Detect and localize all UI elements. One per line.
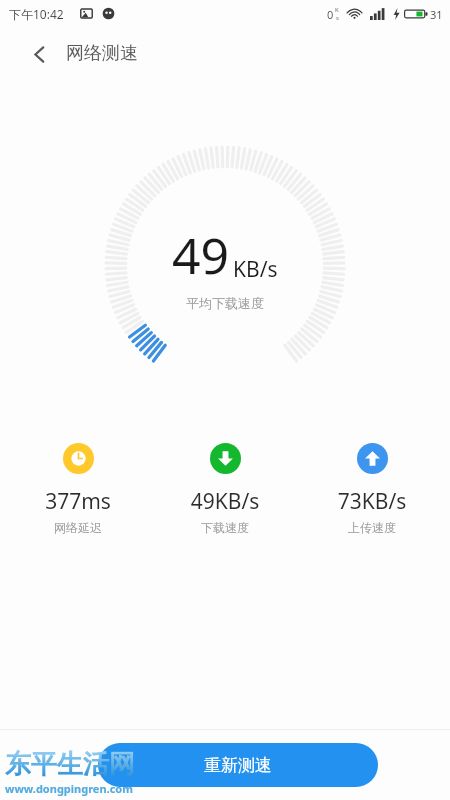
- button[interactable]: Back: [19, 34, 59, 74]
- staticText: 网络延迟: [18, 520, 138, 535]
- staticText: 49: [172, 221, 230, 289]
- staticText: K: [335, 6, 339, 14]
- staticText: 平均下载速度: [186, 295, 264, 311]
- staticText: 下载速度: [165, 520, 285, 535]
- staticText: 49KB/s: [165, 487, 285, 516]
- button[interactable]: 377ms: [18, 443, 138, 535]
- staticText: s: [336, 14, 339, 22]
- staticText: 重新测速: [204, 755, 272, 776]
- button[interactable]: 重新测速: [98, 743, 378, 787]
- staticText: 31: [430, 7, 443, 22]
- button[interactable]: 73KB/s: [312, 443, 432, 535]
- button[interactable]: 49KB/s: [165, 443, 285, 535]
- staticText: 上传速度: [312, 520, 432, 535]
- staticText: 东平生活网: [5, 748, 135, 781]
- staticText: KB/s: [233, 255, 278, 284]
- staticText: 377ms: [18, 487, 138, 516]
- staticText: 网络测速: [66, 42, 138, 65]
- staticText: 下午10:42: [9, 6, 64, 22]
- staticText: 73KB/s: [312, 487, 432, 516]
- staticText: www.dongpingren.com: [5, 781, 133, 796]
- staticText: 0: [327, 7, 334, 22]
